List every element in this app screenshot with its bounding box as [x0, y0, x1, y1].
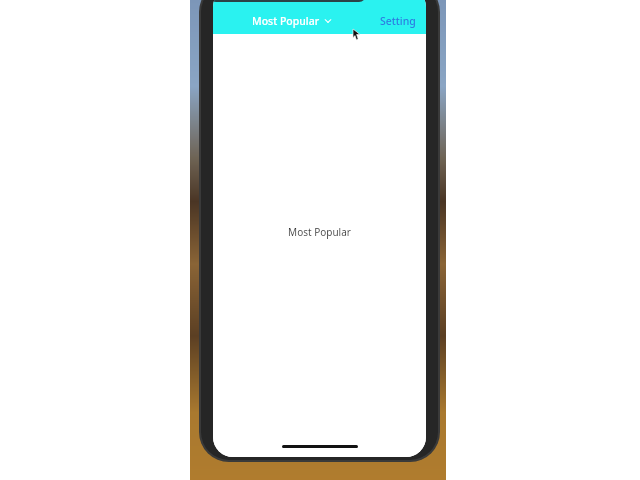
staticText: Most Popular — [288, 225, 351, 239]
staticText: Setting — [380, 14, 416, 28]
staticText: Most Popular — [252, 14, 320, 28]
button[interactable]: Setting — [372, 11, 424, 31]
other: Open category menu — [324, 17, 332, 25]
button[interactable]: Most Popular — [246, 12, 338, 30]
